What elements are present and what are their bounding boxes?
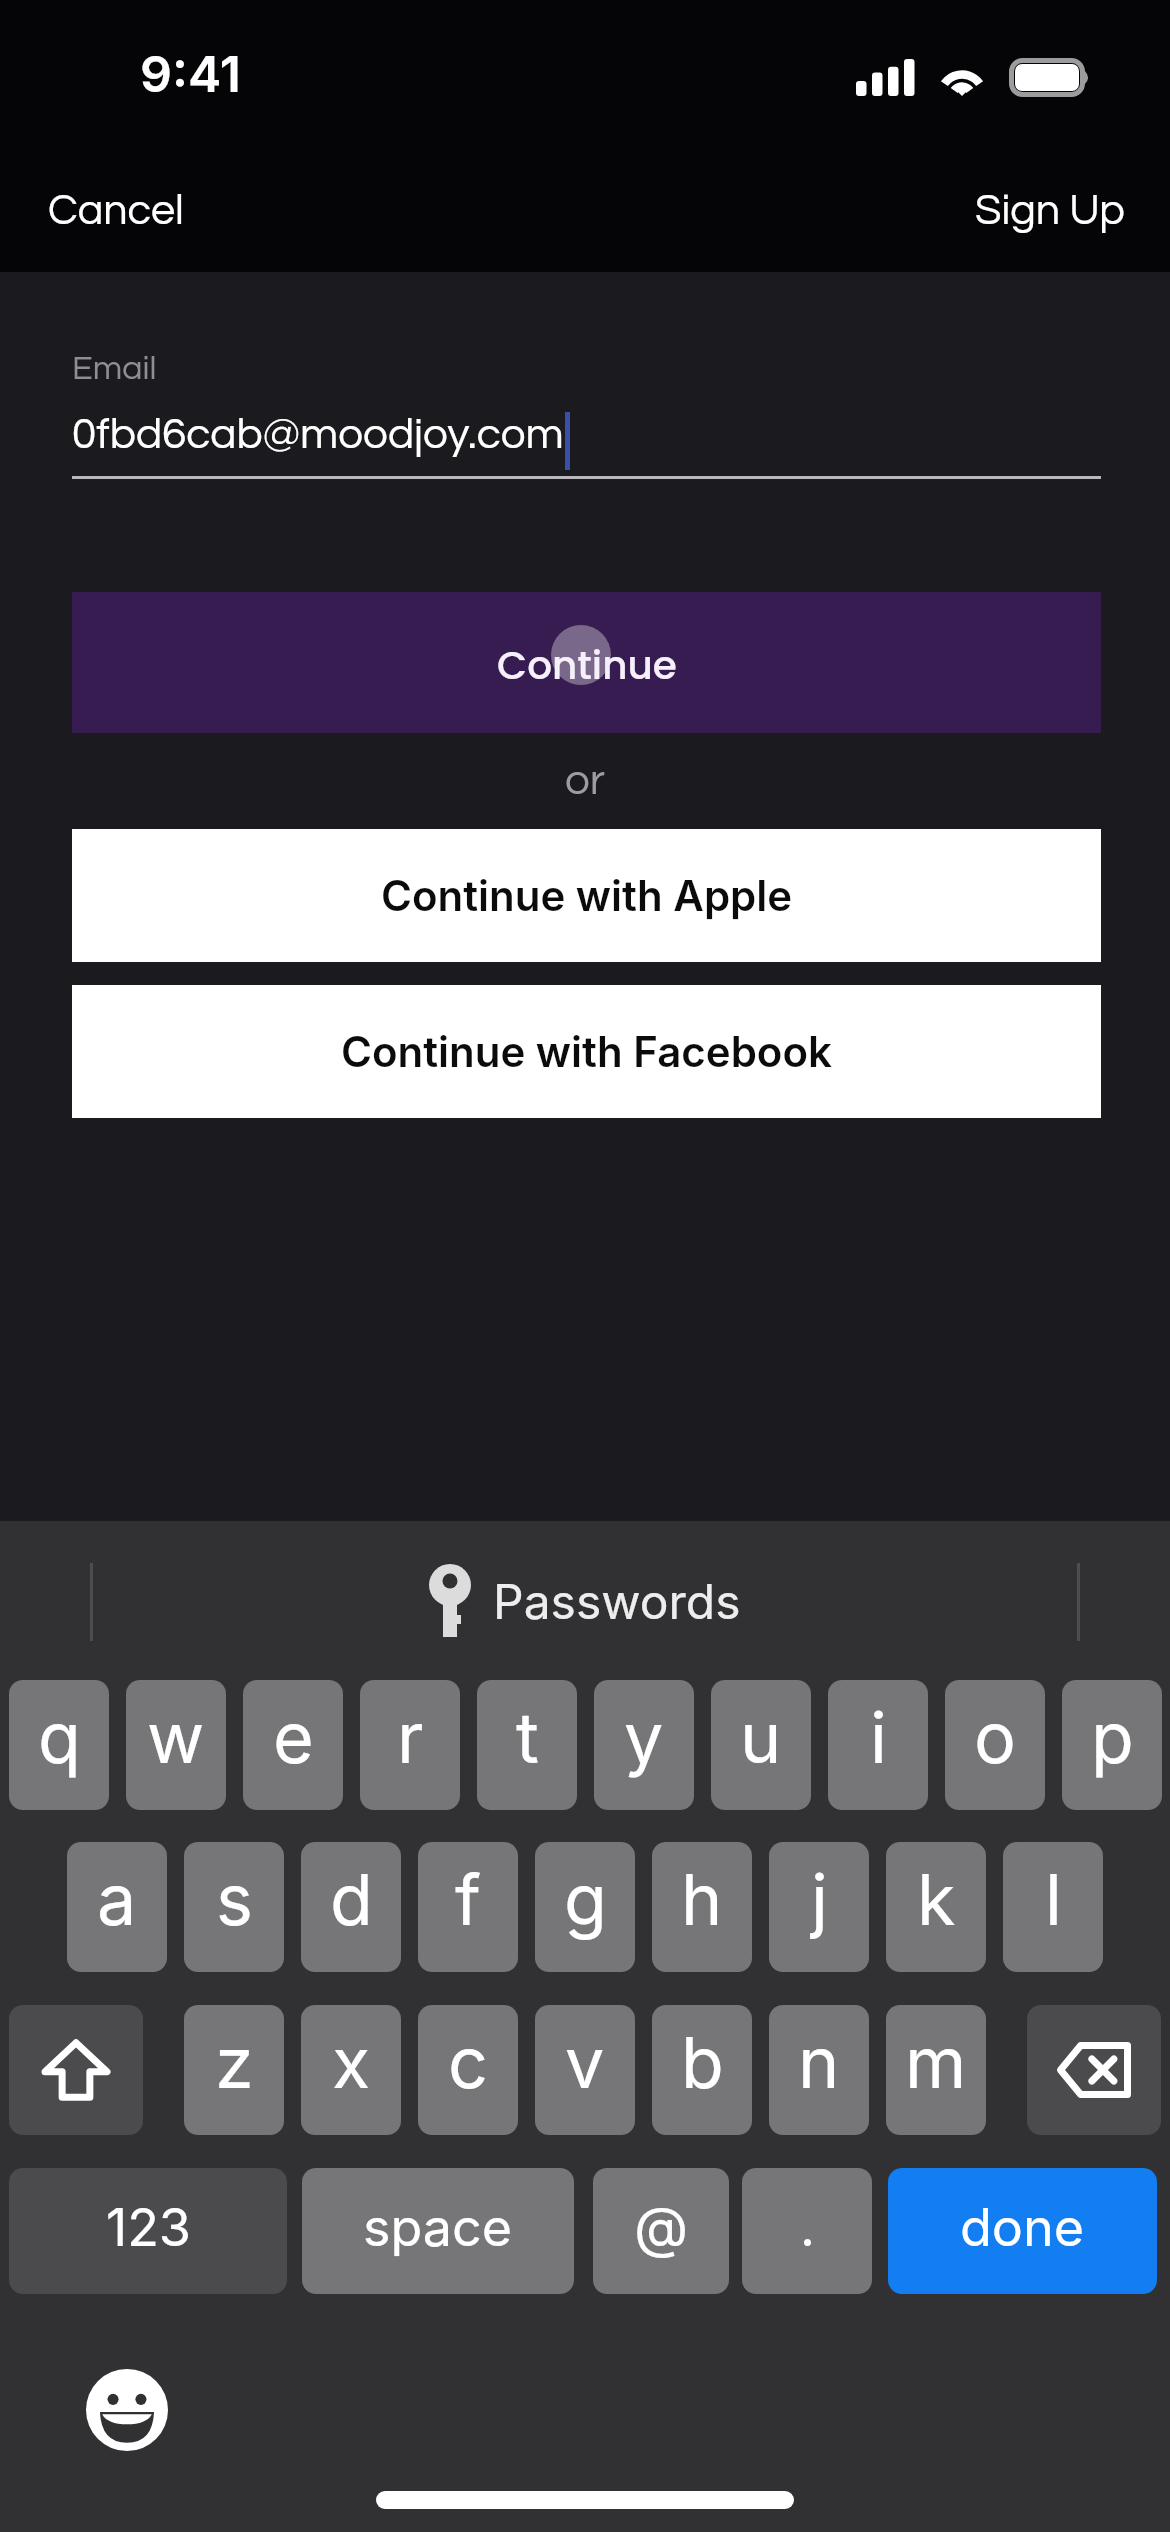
button[interactable]: h [652, 1842, 752, 1972]
button[interactable]: Continue with Apple [72, 829, 1101, 962]
staticText: e [273, 1695, 314, 1780]
staticText: b [681, 2020, 724, 2105]
staticText: Sign Up [975, 189, 1125, 233]
button[interactable]: done [888, 2168, 1157, 2294]
button[interactable]: n [769, 2005, 869, 2135]
button[interactable]: Backspace [1027, 2005, 1161, 2135]
button[interactable]: q [9, 1680, 109, 1810]
button[interactable]: b [652, 2005, 752, 2135]
other: Shift [43, 2039, 109, 2101]
button[interactable]: v [535, 2005, 635, 2135]
staticText: r [397, 1695, 424, 1780]
button[interactable]: . [742, 2168, 872, 2294]
button[interactable]: d [301, 1842, 401, 1972]
staticText: or [565, 758, 605, 803]
button[interactable]: Continue with Facebook [72, 985, 1101, 1118]
staticText: @ [634, 2193, 689, 2261]
button[interactable]: z [184, 2005, 284, 2135]
staticText: v [565, 2020, 605, 2105]
staticText: y [624, 1695, 664, 1780]
button[interactable]: Passwords [405, 1549, 765, 1653]
staticText: x [332, 2020, 371, 2105]
button[interactable]: c [418, 2005, 518, 2135]
staticText: 123 [106, 2196, 191, 2259]
staticText: m [905, 2020, 967, 2105]
staticText: q [38, 1695, 81, 1780]
staticText: i [870, 1695, 887, 1780]
button[interactable]: Shift [9, 2005, 143, 2135]
other: Backspace [1057, 2042, 1131, 2098]
button[interactable]: f [418, 1842, 518, 1972]
button[interactable]: 123 [9, 2168, 287, 2294]
button[interactable]: k [886, 1842, 986, 1972]
staticText: Cancel [48, 189, 184, 233]
button[interactable]: y [594, 1680, 694, 1810]
button[interactable]: t [477, 1680, 577, 1810]
button[interactable]: a [67, 1842, 167, 1972]
button[interactable]: i [828, 1680, 928, 1810]
staticText: s [216, 1857, 253, 1942]
staticText: f [455, 1857, 481, 1942]
staticText: . [800, 2196, 815, 2259]
staticText: u [740, 1695, 782, 1780]
staticText: p [1091, 1695, 1134, 1780]
staticText: g [564, 1857, 607, 1942]
staticText: l [1045, 1857, 1062, 1942]
staticText: Continue with Apple [381, 870, 793, 921]
button[interactable]: space [302, 2168, 574, 2294]
staticText: t [516, 1695, 539, 1780]
staticText: 9:41 [140, 44, 241, 104]
staticText: space [363, 2196, 513, 2259]
button[interactable]: x [301, 2005, 401, 2135]
staticText: d [330, 1857, 373, 1942]
button[interactable]: w [126, 1680, 226, 1810]
staticText: Passwords [493, 1572, 741, 1630]
button[interactable]: r [360, 1680, 460, 1810]
staticText: c [448, 2020, 488, 2105]
button[interactable]: @ [593, 2168, 729, 2294]
staticText: h [681, 1857, 723, 1942]
staticText: 0fbd6cab@moodjoy.com [72, 412, 564, 457]
staticText: a [97, 1857, 137, 1942]
button[interactable]: s [184, 1842, 284, 1972]
button[interactable]: j [769, 1842, 869, 1972]
staticText: n [798, 2020, 840, 2105]
staticText: Continue with Facebook [341, 1026, 832, 1077]
button[interactable]: u [711, 1680, 811, 1810]
button[interactable]: l [1003, 1842, 1103, 1972]
button[interactable]: p [1062, 1680, 1162, 1810]
staticText: w [147, 1695, 205, 1780]
button[interactable]: m [886, 2005, 986, 2135]
staticText: done [960, 2196, 1085, 2259]
staticText: Continue [497, 638, 677, 693]
staticText: o [974, 1695, 1016, 1780]
button[interactable]: g [535, 1842, 635, 1972]
button[interactable]: Sign Up [956, 173, 1144, 249]
staticText: Email [72, 351, 157, 386]
button[interactable]: Emoji keyboard [86, 2369, 168, 2451]
button[interactable]: e [243, 1680, 343, 1810]
staticText: j [811, 1857, 828, 1942]
button[interactable]: o [945, 1680, 1045, 1810]
staticText: k [917, 1857, 956, 1942]
button[interactable]: Continue [72, 592, 1101, 733]
button[interactable]: Cancel [29, 173, 203, 249]
staticText: z [215, 2020, 254, 2105]
